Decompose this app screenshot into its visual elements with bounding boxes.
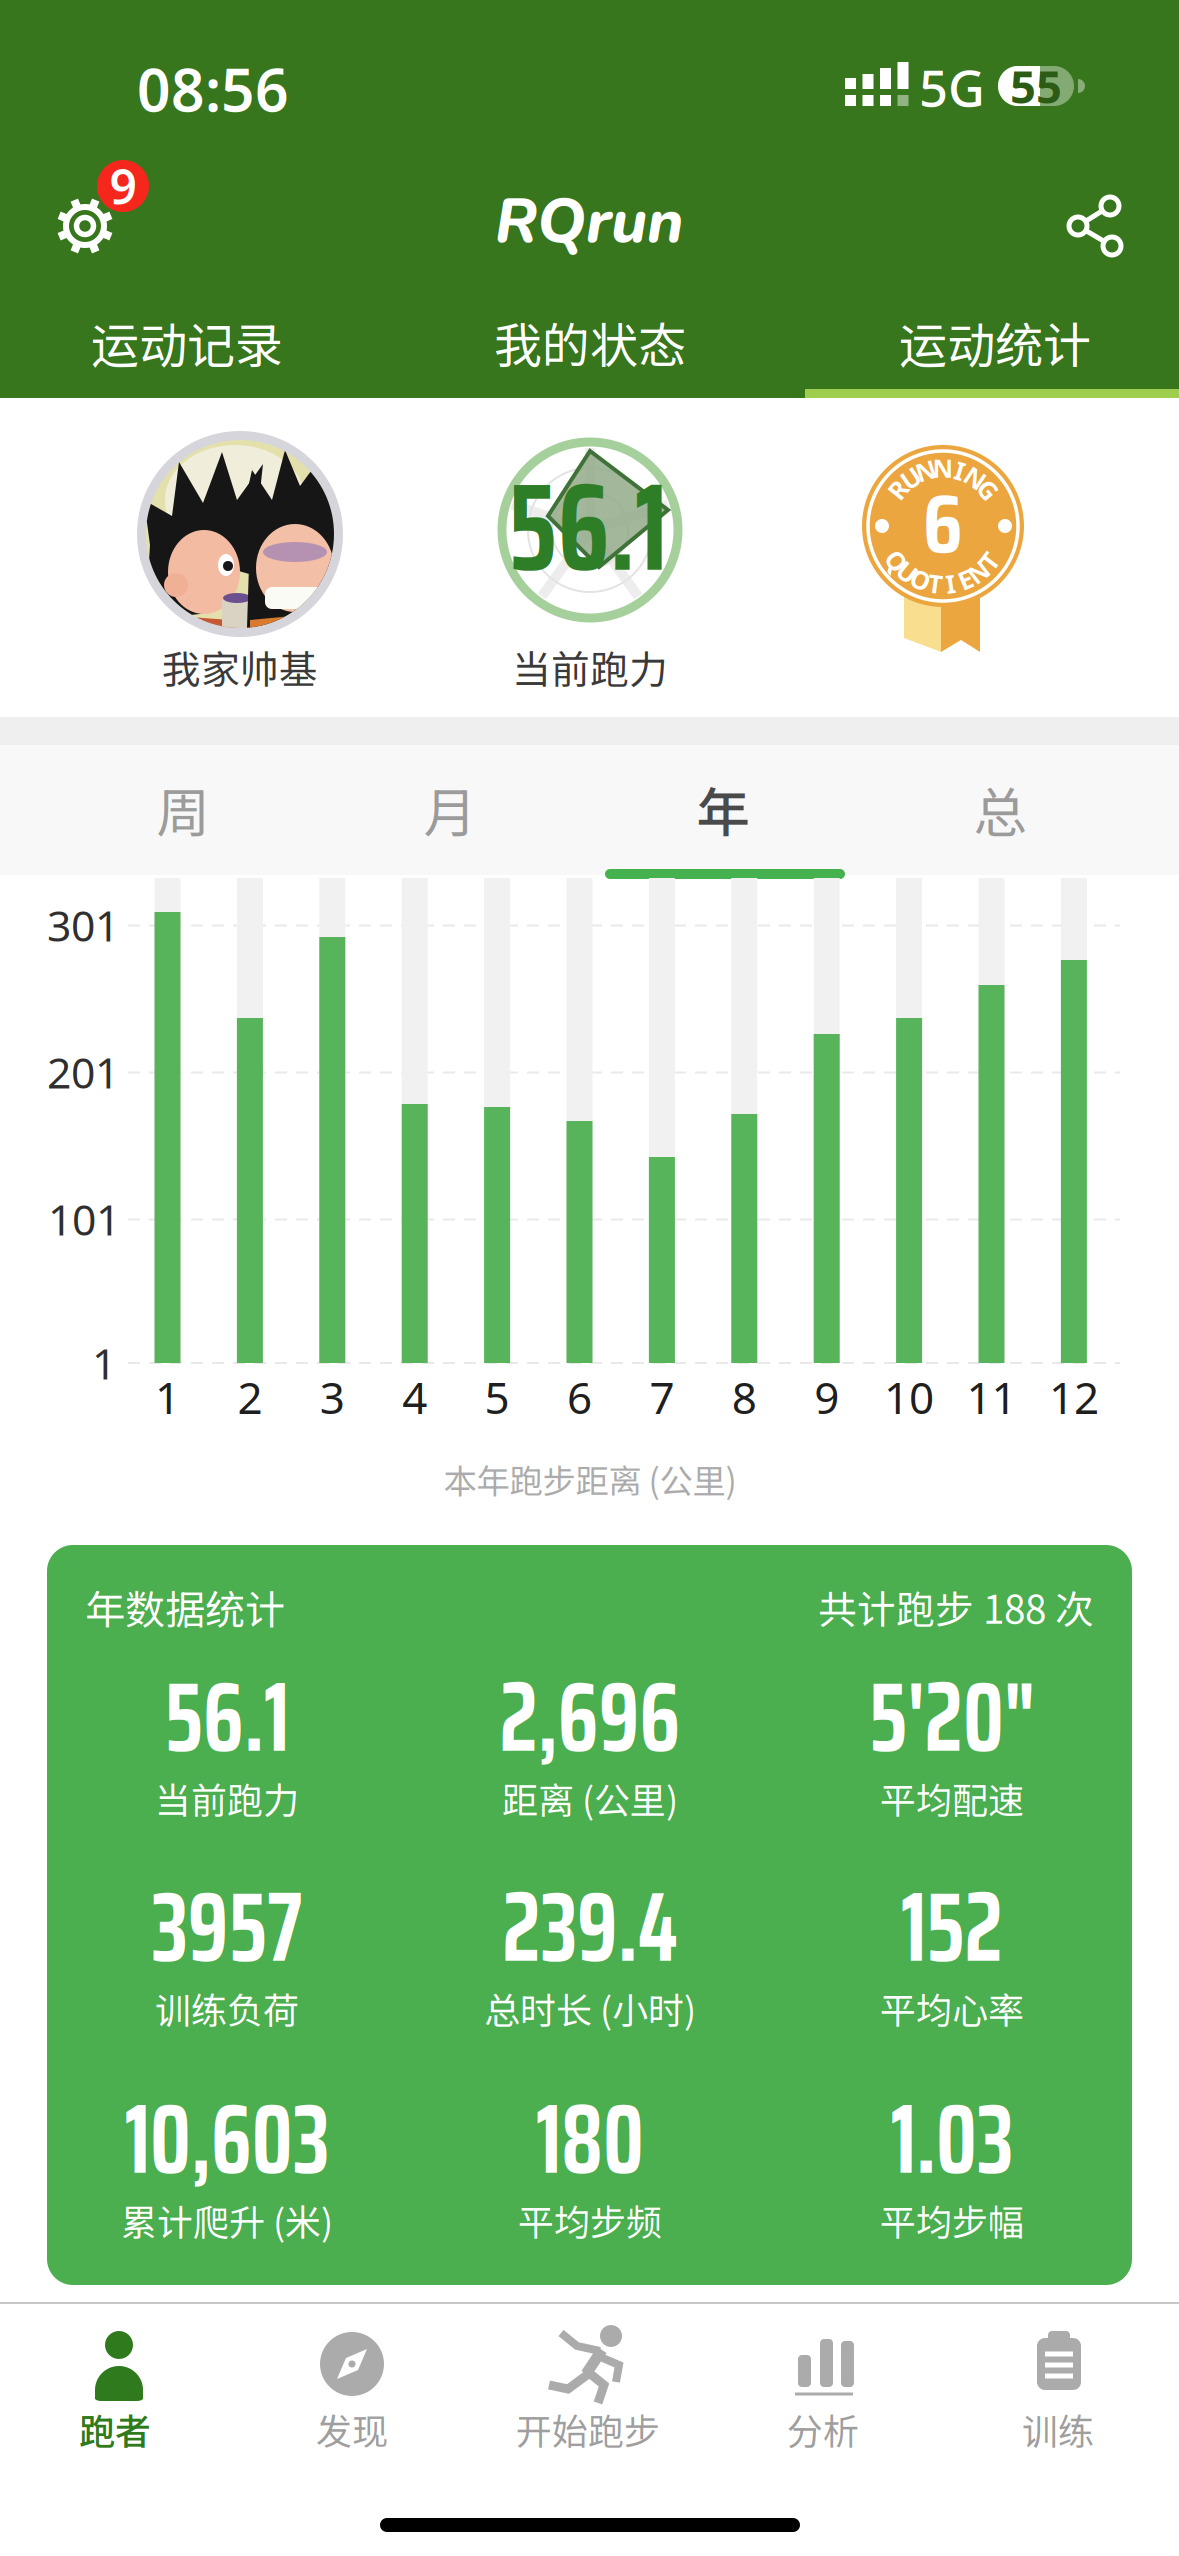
staticText: 5'20" xyxy=(856,1640,1047,1794)
staticText: 6 xyxy=(567,1367,592,1427)
staticText: 共计跑步 188 次 xyxy=(818,1579,1094,1635)
staticText: 10,603 xyxy=(109,2062,344,2216)
staticText: 分析 xyxy=(787,2403,859,2455)
staticText: I xyxy=(955,453,965,488)
staticText: 12 xyxy=(1049,1367,1099,1427)
staticText: 239.4 xyxy=(489,1850,691,2004)
staticText: 56.1 xyxy=(497,430,678,624)
staticText: 平均心率 xyxy=(880,1982,1024,2034)
staticText: 平均步幅 xyxy=(880,2194,1024,2246)
staticText: 距离 (公里) xyxy=(502,1772,678,1824)
staticText: 2 xyxy=(237,1367,262,1427)
staticText: 1 xyxy=(155,1367,180,1427)
staticText: N xyxy=(968,554,989,589)
staticText: N xyxy=(965,461,986,495)
staticText: 我的状态 xyxy=(494,307,686,377)
staticText: 3 xyxy=(320,1367,345,1427)
staticText: 训练 xyxy=(1022,2403,1094,2455)
staticText: 9 xyxy=(109,153,136,219)
staticText: 本年跑步距离 (公里) xyxy=(443,1455,736,1503)
staticText: O xyxy=(911,562,931,597)
staticText: 201 xyxy=(47,1043,119,1101)
staticText: I xyxy=(946,566,956,601)
staticText: T xyxy=(928,566,943,601)
staticText: 周 xyxy=(156,770,209,848)
staticText: R xyxy=(889,472,906,507)
staticText: 我家帅基 xyxy=(162,639,318,695)
staticText: G xyxy=(979,472,997,507)
staticText: 10 xyxy=(884,1367,934,1427)
staticText: 运动统计 xyxy=(899,307,1091,377)
staticText: 7 xyxy=(649,1367,674,1427)
staticText: U xyxy=(901,461,920,495)
staticText: 8 xyxy=(732,1367,757,1427)
staticText: RQrun xyxy=(495,180,683,264)
staticText: 总时长 (小时) xyxy=(484,1982,696,2034)
staticText: N xyxy=(915,453,936,488)
staticText: 年数据统计 xyxy=(85,1578,285,1636)
staticText: Q xyxy=(887,544,907,578)
staticText: 累计爬升 (米) xyxy=(121,2194,333,2246)
staticText: 2,696 xyxy=(486,1640,694,1794)
staticText: 月 xyxy=(423,770,476,848)
staticText: 55 xyxy=(1010,55,1062,117)
staticText: 5 xyxy=(485,1367,510,1427)
staticText: 08:56 xyxy=(137,49,289,129)
staticText: 运动记录 xyxy=(91,307,283,377)
staticText: 152 xyxy=(893,1850,1010,2004)
staticText: 平均步频 xyxy=(518,2194,662,2246)
staticText: 年 xyxy=(696,770,749,848)
staticText: 4 xyxy=(402,1367,427,1427)
staticText: U xyxy=(898,554,917,589)
staticText: 训练负荷 xyxy=(155,1982,299,2034)
staticText: 开始跑步 xyxy=(516,2403,660,2455)
staticText: 6 xyxy=(923,459,963,589)
staticText: N xyxy=(932,451,953,485)
staticText: 9 xyxy=(814,1367,839,1427)
staticText: 当前跑力 xyxy=(512,639,668,695)
staticText: 跑者 xyxy=(79,2403,151,2455)
staticText: 总 xyxy=(973,770,1026,848)
staticText: 发现 xyxy=(316,2403,388,2455)
staticText: T xyxy=(982,544,997,578)
staticText: 11 xyxy=(966,1367,1016,1427)
staticText: 1 xyxy=(92,1334,116,1392)
staticText: 3957 xyxy=(140,1850,314,2004)
staticText: 5G xyxy=(919,52,985,121)
staticText: E xyxy=(958,562,972,597)
staticText: 56.1 xyxy=(155,1640,298,1794)
staticText: 180 xyxy=(528,2062,652,2216)
staticText: 301 xyxy=(47,896,119,954)
staticText: 101 xyxy=(48,1190,120,1248)
staticText: 当前跑力 xyxy=(155,1772,299,1824)
staticText: 平均配速 xyxy=(880,1772,1024,1824)
staticText: 1.03 xyxy=(881,2062,1022,2216)
